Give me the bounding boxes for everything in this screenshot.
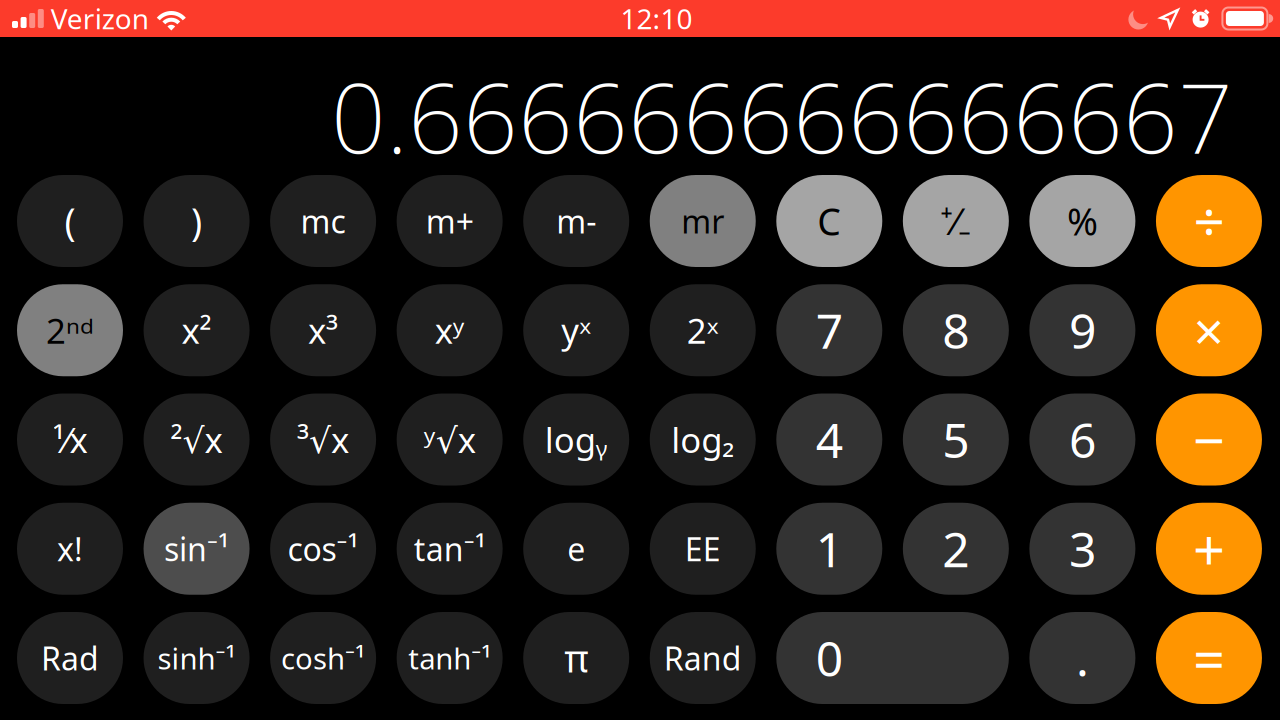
button[interactable]: 2ˣ (650, 284, 756, 376)
staticText: 0 (816, 626, 843, 690)
button[interactable]: x² (144, 284, 250, 376)
staticText: ³√x (297, 416, 349, 462)
staticText: = (1193, 621, 1225, 695)
button[interactable]: % (1029, 175, 1135, 267)
button[interactable]: 3 (1029, 503, 1135, 595)
button[interactable]: logᵧ (523, 393, 629, 485)
button[interactable]: cos⁻¹ (270, 503, 376, 595)
staticText: xʸ (435, 307, 465, 353)
staticText: yˣ (561, 307, 591, 353)
button[interactable]: − (1156, 393, 1262, 485)
staticText: mr (681, 200, 724, 242)
staticText: ÷ (1193, 185, 1224, 257)
button[interactable]: Rand (650, 612, 756, 704)
button[interactable]: ʸ√x (397, 393, 503, 485)
button[interactable]: m- (523, 175, 629, 267)
staticText: 8 (942, 298, 969, 362)
staticText: . (1076, 626, 1089, 690)
button[interactable]: sin⁻¹ (144, 503, 250, 595)
button[interactable]: cosh⁻¹ (270, 612, 376, 704)
staticText: ⁺⁄₋ (940, 196, 971, 246)
button[interactable]: sinh⁻¹ (144, 612, 250, 704)
button[interactable]: xʸ (397, 284, 503, 376)
button[interactable]: C (776, 175, 882, 267)
button[interactable]: x! (17, 503, 123, 595)
button[interactable]: π (523, 612, 629, 704)
button[interactable]: 1 (776, 503, 882, 595)
button[interactable]: + (1156, 503, 1262, 595)
staticText: ¹⁄x (52, 416, 87, 462)
staticText: tanh⁻¹ (408, 638, 491, 677)
button[interactable]: EE (650, 503, 756, 595)
staticText: + (1193, 512, 1225, 586)
staticText: Verizon (51, 0, 149, 37)
staticText: 12:10 (621, 0, 693, 37)
staticText: 2ⁿᵈ (46, 307, 94, 353)
button[interactable]: x³ (270, 284, 376, 376)
staticText: % (1067, 196, 1098, 246)
staticText: × (1193, 295, 1224, 366)
button[interactable]: mr (650, 175, 756, 267)
staticText: ( (64, 196, 75, 246)
button[interactable]: 2 (903, 503, 1009, 595)
button[interactable]: 9 (1029, 284, 1135, 376)
staticText: C (817, 196, 841, 246)
staticText: sin⁻¹ (164, 527, 229, 570)
button[interactable]: = (1156, 612, 1262, 704)
staticText: m- (556, 200, 596, 242)
button[interactable]: ²√x (144, 393, 250, 485)
staticText: tan⁻¹ (414, 527, 486, 570)
staticText: cos⁻¹ (288, 527, 359, 570)
button[interactable]: ¹⁄x (17, 393, 123, 485)
button[interactable]: ÷ (1156, 175, 1262, 267)
button[interactable]: × (1156, 284, 1262, 376)
staticText: 0.666666666666667 (331, 52, 1233, 180)
button[interactable]: tanh⁻¹ (397, 612, 503, 704)
staticText: 2 (942, 517, 969, 581)
staticText: ²√x (171, 416, 223, 462)
staticText: e (567, 527, 585, 570)
staticText: mc (301, 200, 346, 242)
button[interactable]: 0 (776, 612, 1009, 704)
button[interactable]: 7 (776, 284, 882, 376)
button[interactable]: ³√x (270, 393, 376, 485)
button[interactable]: 4 (776, 393, 882, 485)
button[interactable]: 5 (903, 393, 1009, 485)
staticText: − (1193, 402, 1225, 477)
staticText: x³ (308, 307, 338, 353)
staticText: 4 (816, 408, 843, 471)
staticText: x² (182, 307, 212, 353)
button[interactable]: m+ (397, 175, 503, 267)
staticText: m+ (426, 200, 474, 242)
staticText: 6 (1069, 408, 1096, 471)
staticText: 1 (816, 517, 843, 581)
staticText: log₂ (671, 416, 734, 462)
button[interactable]: Rad (17, 612, 123, 704)
button[interactable]: ) (144, 175, 250, 267)
staticText: ) (191, 196, 202, 246)
staticText: 3 (1069, 517, 1096, 581)
staticText: ʸ√x (424, 416, 476, 462)
staticText: 7 (816, 298, 843, 362)
button[interactable]: mc (270, 175, 376, 267)
button[interactable]: yˣ (523, 284, 629, 376)
staticText: π (564, 633, 588, 683)
button[interactable]: 8 (903, 284, 1009, 376)
staticText: 9 (1069, 298, 1096, 362)
button[interactable]: log₂ (650, 393, 756, 485)
button[interactable]: ⁺⁄₋ (903, 175, 1009, 267)
button[interactable]: 2ⁿᵈ (17, 284, 123, 376)
button[interactable]: ( (17, 175, 123, 267)
staticText: 5 (942, 408, 969, 471)
staticText: cosh⁻¹ (281, 638, 365, 677)
button[interactable]: . (1029, 612, 1135, 704)
staticText: EE (685, 527, 721, 570)
staticText: logᵧ (545, 416, 608, 462)
staticText: 2ˣ (687, 307, 719, 353)
staticText: Rad (41, 637, 99, 679)
button[interactable]: 6 (1029, 393, 1135, 485)
button[interactable]: tan⁻¹ (397, 503, 503, 595)
staticText: Rand (664, 637, 742, 679)
button[interactable]: e (523, 503, 629, 595)
staticText: sinh⁻¹ (158, 638, 236, 677)
